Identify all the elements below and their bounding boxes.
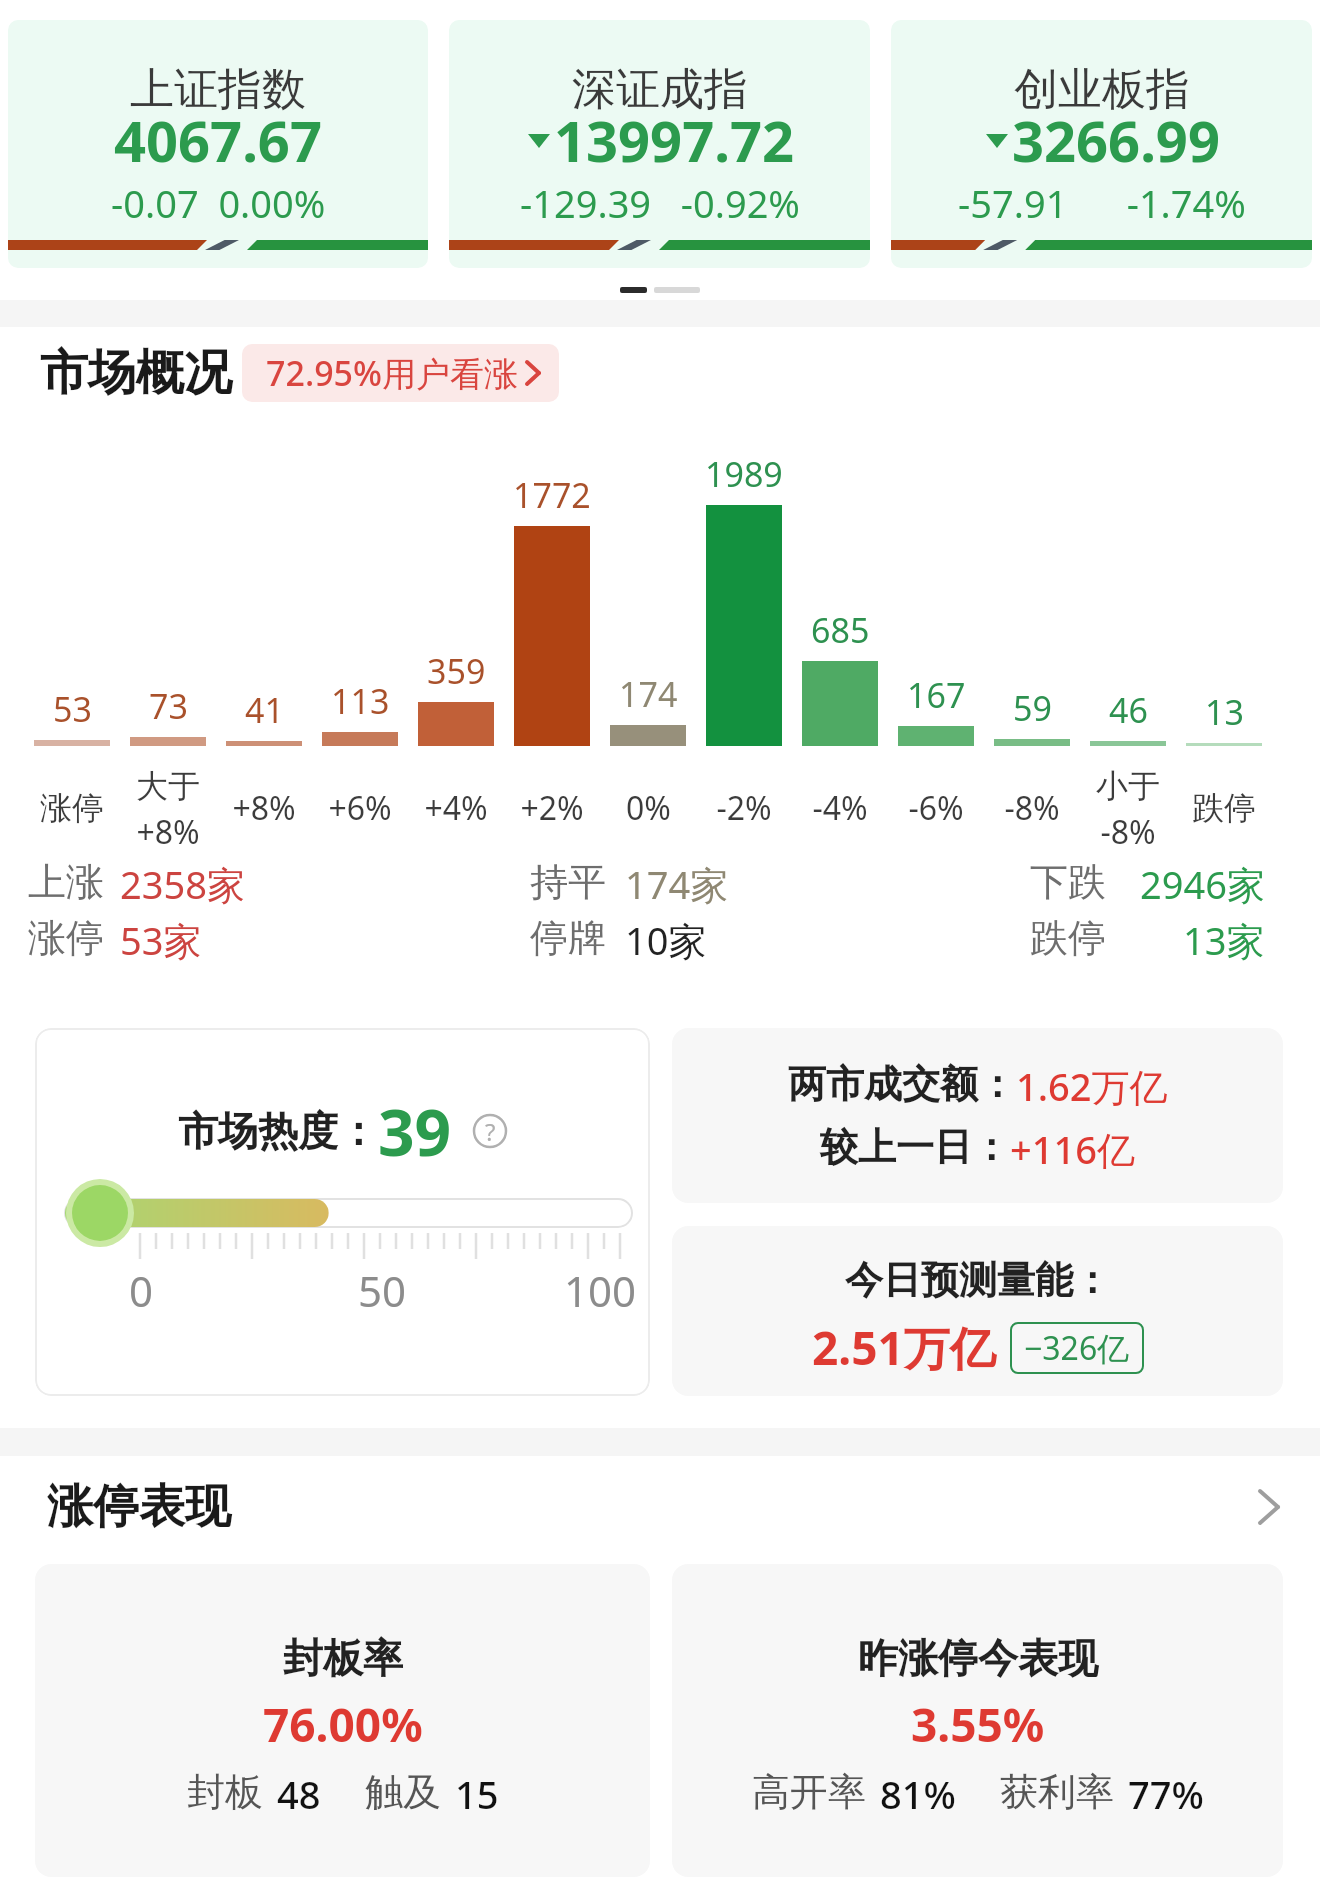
staticText: −326亿: [1024, 1326, 1130, 1370]
staticText: 167: [907, 672, 966, 718]
staticText: 2.51万亿: [812, 1316, 996, 1379]
staticText: 2946家: [1140, 858, 1265, 910]
button[interactable]: 昨涨停今表现: [672, 1564, 1283, 1877]
staticText: 昨涨停今表现: [858, 1633, 1098, 1683]
staticText: 市场热度：: [178, 1106, 378, 1156]
staticText: 53: [53, 686, 92, 732]
staticText: +6%: [328, 786, 392, 830]
staticText: 72.95%用户看涨: [266, 350, 519, 396]
staticText: 高开率: [752, 1768, 866, 1816]
staticText: 深证成指: [572, 62, 748, 117]
staticText: 上证指数: [130, 62, 306, 117]
staticText: -2%: [716, 786, 772, 830]
staticText: -4%: [812, 786, 868, 830]
button[interactable]: 封板率: [35, 1564, 650, 1877]
button[interactable]: 72.95%用户看涨: [242, 344, 559, 402]
staticText: 685: [811, 607, 870, 653]
staticText: 39: [378, 1088, 452, 1175]
staticText: 停牌: [530, 914, 606, 962]
staticText: 46: [1109, 687, 1148, 733]
staticText: 涨停表现: [47, 1478, 231, 1536]
staticText: 1.62万亿: [1016, 1060, 1168, 1112]
staticText: 50: [358, 1262, 407, 1319]
staticText: 跌停: [1030, 914, 1106, 962]
staticText: 涨停: [28, 914, 104, 962]
staticText: 触及: [365, 1768, 441, 1816]
button[interactable]: 深证成指: [449, 20, 870, 268]
staticText: +4%: [424, 786, 488, 830]
staticText: 大于 +8%: [136, 766, 200, 850]
staticText: 小于 -8%: [1096, 766, 1160, 850]
staticText: 创业板指: [1014, 62, 1190, 117]
staticText: +2%: [520, 786, 584, 830]
staticText: 13997.72: [554, 102, 794, 178]
staticText: 100: [564, 1262, 637, 1319]
staticText: 359: [427, 648, 486, 694]
staticText: 2358家: [120, 858, 245, 910]
staticText: 73: [149, 683, 188, 729]
staticText: 174家: [625, 858, 729, 910]
staticText: -0.07 0.00%: [111, 177, 326, 229]
staticText: 113: [331, 678, 390, 724]
staticText: 较上一日：: [820, 1123, 1010, 1171]
staticText: 0: [129, 1262, 154, 1319]
staticText: 4067.67: [114, 102, 322, 178]
staticText: 174: [619, 671, 678, 717]
staticText: 下跌: [1030, 858, 1106, 906]
staticText: 今日预测量能：: [845, 1256, 1111, 1304]
staticText: 3.55%: [911, 1693, 1045, 1756]
staticText: 76.00%: [263, 1693, 423, 1756]
staticText: +116亿: [1010, 1123, 1135, 1175]
staticText: 77%: [1128, 1768, 1204, 1820]
staticText: 81%: [880, 1768, 956, 1820]
staticText: 1772: [513, 472, 591, 518]
staticText: 封板率: [283, 1633, 403, 1683]
staticText: +8%: [232, 786, 296, 830]
staticText: 53家: [120, 914, 202, 966]
staticText: 10家: [625, 914, 707, 966]
staticText: 1989: [705, 451, 783, 497]
staticText: 跌停: [1192, 788, 1256, 828]
staticText: 15: [455, 1768, 499, 1820]
button[interactable]: 创业板指: [891, 20, 1312, 268]
button[interactable]: 涨停表现: [0, 1478, 1320, 1536]
staticText: ?: [485, 1115, 496, 1148]
staticText: 0%: [626, 786, 671, 830]
staticText: 获利率: [1000, 1768, 1114, 1816]
staticText: 41: [245, 687, 284, 733]
staticText: 48: [277, 1768, 321, 1820]
staticText: 两市成交额：: [788, 1060, 1016, 1108]
staticText: 封板: [187, 1768, 263, 1816]
staticText: 上涨: [28, 858, 104, 906]
staticText: -8%: [1004, 786, 1060, 830]
staticText: 3266.99: [1012, 102, 1220, 178]
staticText: -57.91 -1.74%: [958, 177, 1246, 229]
staticText: 13家: [1183, 914, 1265, 966]
staticText: -129.39 -0.92%: [520, 177, 800, 229]
staticText: 59: [1013, 685, 1052, 731]
button[interactable]: 上证指数: [8, 20, 428, 268]
staticText: 持平: [530, 858, 606, 906]
staticText: 市场概况: [40, 343, 232, 403]
staticText: -6%: [908, 786, 964, 830]
staticText: 涨停: [40, 788, 104, 828]
staticText: 13: [1205, 689, 1244, 735]
